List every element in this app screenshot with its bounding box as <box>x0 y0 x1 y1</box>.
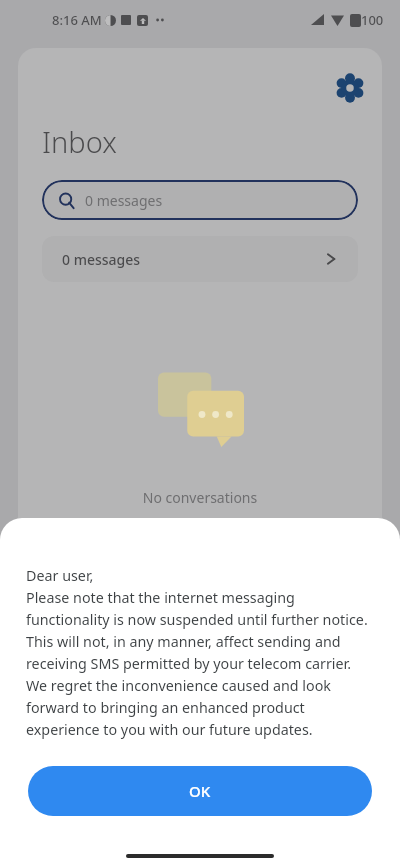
staticText: 0 messages <box>62 250 141 269</box>
button[interactable]: Settings <box>330 68 370 108</box>
staticText: Dear user, Please note that the internet… <box>26 566 374 739</box>
staticText: 100 <box>361 11 384 29</box>
button[interactable]: 0 messages <box>42 180 358 220</box>
staticText: 0 messages <box>85 191 163 210</box>
button[interactable]: OK <box>28 766 372 816</box>
staticText: 8:16 AM <box>52 11 102 29</box>
button[interactable]: 0 messages <box>42 236 358 282</box>
staticText: OK <box>189 781 211 801</box>
staticText: No conversations <box>18 488 382 507</box>
staticText: Inbox <box>42 122 117 161</box>
